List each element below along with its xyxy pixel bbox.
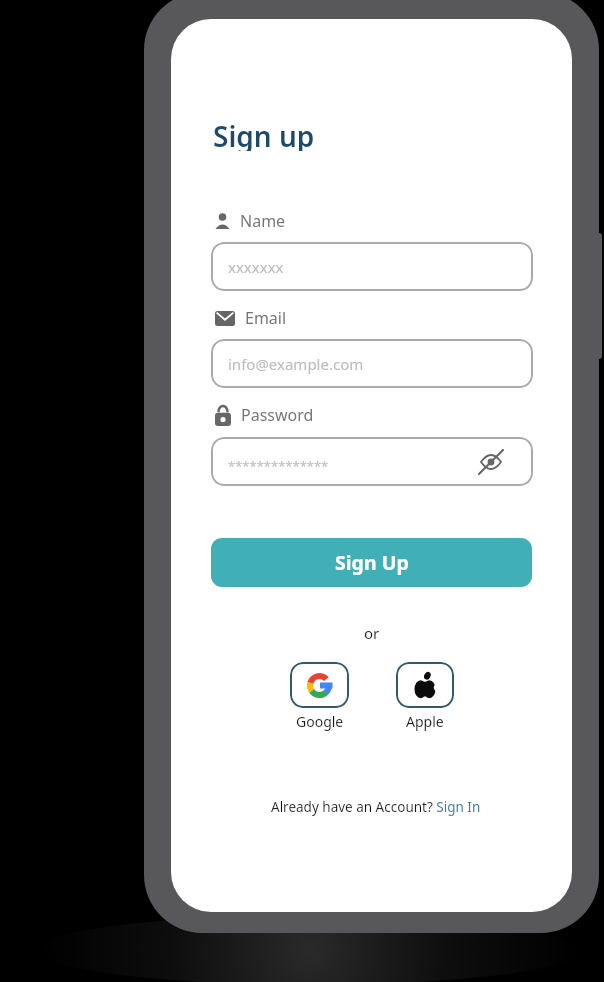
staticText: Password — [241, 404, 314, 426]
button[interactable]: ************** — [211, 437, 533, 486]
staticText: Sign Up — [335, 549, 409, 576]
staticText: Email — [245, 307, 287, 329]
staticText: Name — [240, 210, 286, 232]
button[interactable]: Sign Up — [211, 538, 532, 587]
staticText: Google — [296, 712, 344, 731]
staticText: xxxxxxx — [228, 257, 284, 277]
staticText: Sign up — [213, 117, 315, 151]
button[interactable]: Already have an Account? Sign In — [175, 796, 572, 818]
staticText: Already have an Account? Sign In — [271, 798, 481, 816]
staticText: info@example.com — [228, 354, 364, 374]
button[interactable] — [396, 662, 454, 708]
staticText: or — [364, 623, 380, 643]
button[interactable]: xxxxxxx — [211, 242, 533, 291]
button[interactable] — [290, 662, 349, 708]
staticText: ************** — [228, 457, 329, 475]
button[interactable]: info@example.com — [211, 339, 533, 388]
staticText: Apple — [406, 712, 444, 731]
